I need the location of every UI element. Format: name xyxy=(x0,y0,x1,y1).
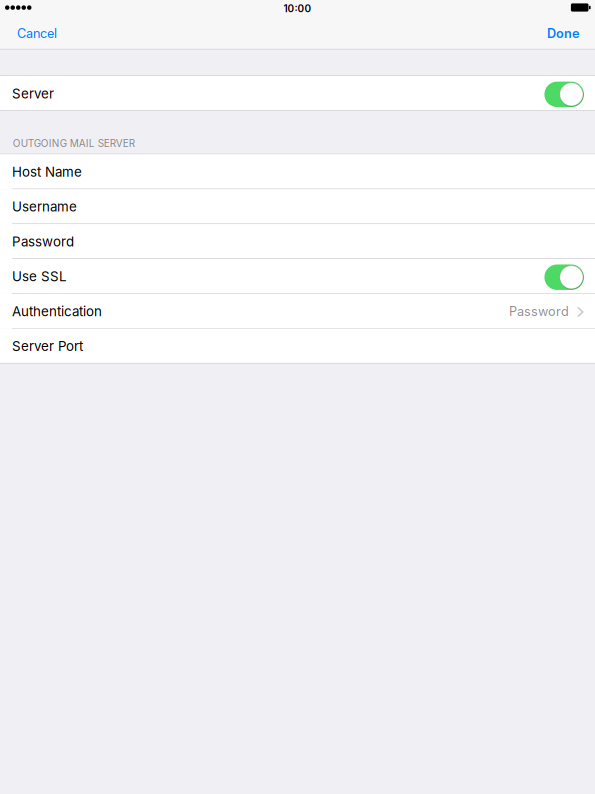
staticText: Password xyxy=(12,233,74,250)
staticText: 10:00 xyxy=(283,3,311,15)
button[interactable]: Server Port xyxy=(0,329,595,364)
staticText: Done xyxy=(547,26,579,41)
button[interactable]: Host Name xyxy=(0,154,595,189)
staticText: Server Port xyxy=(12,338,83,354)
button[interactable]: Cancel xyxy=(0,20,74,50)
staticText: Authentication xyxy=(12,303,102,319)
button[interactable]: Password xyxy=(0,224,595,259)
button[interactable]: Use SSL xyxy=(0,259,595,294)
staticText: Password xyxy=(509,304,569,319)
staticText: Cancel xyxy=(17,26,57,41)
button[interactable]: Server xyxy=(0,76,595,111)
staticText: Server xyxy=(12,85,54,102)
staticText: Use SSL xyxy=(12,268,67,284)
button[interactable]: Done xyxy=(531,20,595,50)
staticText: Username xyxy=(12,199,77,215)
staticText: Host Name xyxy=(12,164,82,180)
staticText: OUTGOING MAIL SERVER xyxy=(13,137,135,149)
button[interactable]: Authentication xyxy=(0,294,595,329)
button[interactable]: Username xyxy=(0,189,595,224)
